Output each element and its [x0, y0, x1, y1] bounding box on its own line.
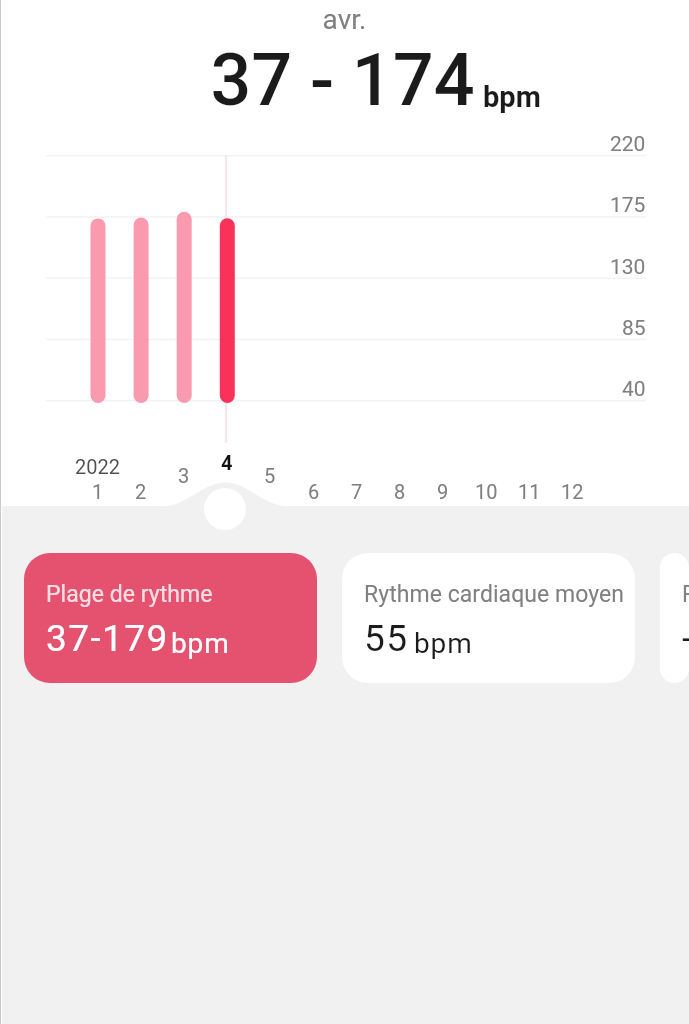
staticText: 37 - 174 [0, 38, 687, 122]
staticText: - [682, 617, 689, 660]
button[interactable]: 12 [550, 480, 594, 502]
button[interactable]: 11 [507, 480, 551, 502]
button[interactable]: 5 [248, 464, 292, 486]
staticText: bpm [414, 627, 473, 660]
staticText: Rythme cardiaque moyen [364, 581, 625, 608]
staticText: bpm [483, 80, 541, 114]
button[interactable]: Plage de rythme [24, 553, 317, 683]
staticText: 3 [178, 464, 190, 486]
button[interactable]: 7 [335, 480, 379, 502]
staticText: 220 [610, 132, 646, 157]
button[interactable]: 9 [421, 480, 465, 502]
staticText: 5 [264, 464, 276, 486]
button[interactable]: Expand chart [204, 488, 246, 530]
button[interactable]: 4 [205, 451, 249, 473]
button[interactable]: 2 [119, 480, 163, 502]
staticText: avr. [0, 3, 689, 36]
staticText: 6 [308, 480, 320, 502]
staticText: 10 [475, 480, 498, 502]
staticText: 40 [622, 377, 646, 402]
staticText: Rythme cardiaque au repos [682, 581, 689, 608]
button[interactable]: 8 [378, 480, 422, 502]
staticText: bpm [171, 627, 230, 660]
staticText: 4 [221, 451, 233, 473]
button[interactable]: 10 [464, 480, 508, 502]
staticText: 8 [394, 480, 406, 502]
button[interactable]: 3 [162, 464, 206, 486]
staticText: 9 [437, 480, 449, 502]
staticText: 2 [135, 480, 147, 502]
staticText: 55 [364, 617, 409, 660]
staticText: 175 [610, 193, 646, 218]
button[interactable]: 1 [76, 480, 120, 502]
staticText: 130 [610, 255, 646, 280]
staticText: 1 [92, 480, 104, 502]
button[interactable]: 6 [292, 480, 336, 502]
staticText: 11 [518, 480, 541, 502]
staticText: 2022 [75, 455, 120, 478]
staticText: Plage de rythme [46, 581, 213, 608]
staticText: 37-179 [46, 617, 169, 660]
button[interactable]: Rythme cardiaque au repos [660, 553, 689, 683]
button[interactable]: Rythme cardiaque moyen [342, 553, 635, 683]
staticText: 12 [561, 480, 584, 502]
staticText: 85 [622, 316, 646, 341]
staticText: 7 [351, 480, 363, 502]
